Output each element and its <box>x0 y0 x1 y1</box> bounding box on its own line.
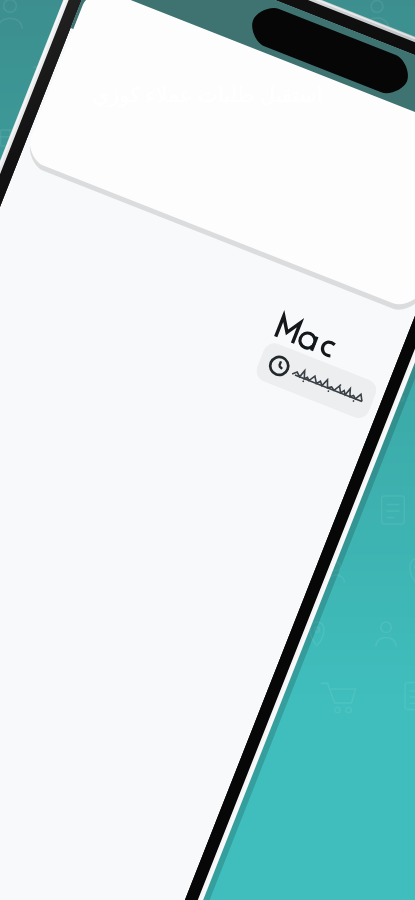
button[interactable]: Continue <box>0 750 415 900</box>
staticText: استقبل طلبات عملاء كوزي <box>18 80 397 109</box>
